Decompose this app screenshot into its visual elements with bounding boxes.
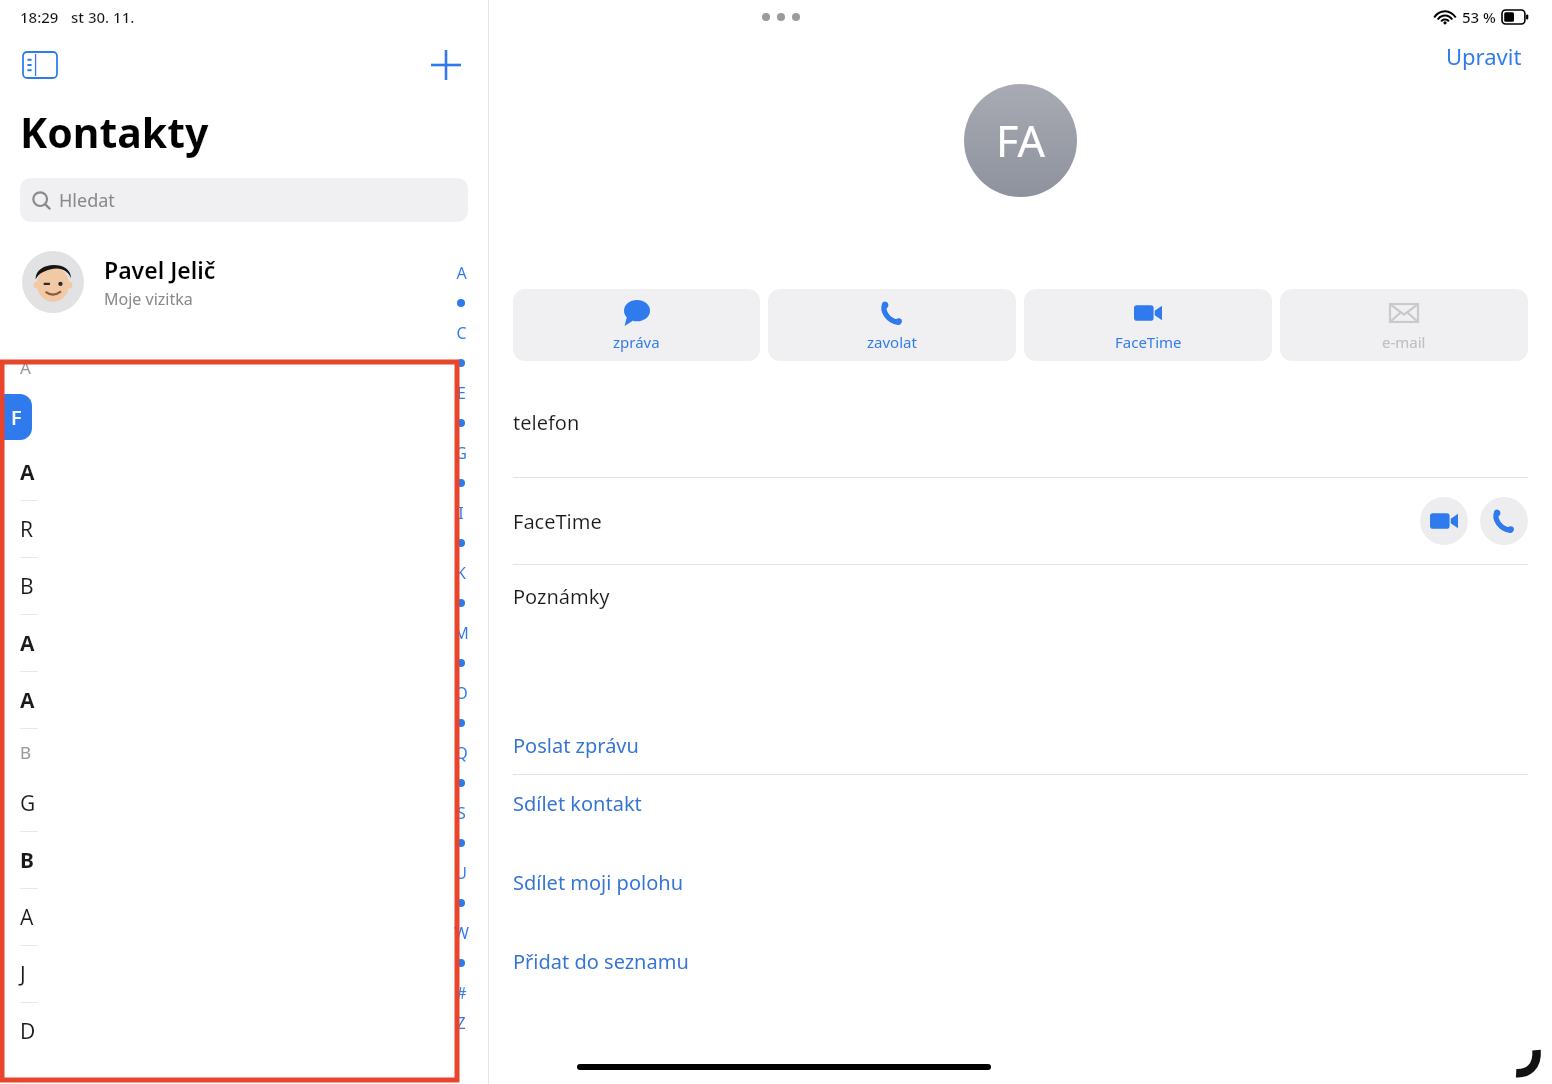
staticText: J: [20, 960, 26, 989]
staticText: E: [457, 382, 466, 404]
staticText: Poznámky: [513, 583, 610, 610]
button[interactable]: B: [0, 558, 488, 614]
button[interactable]: telefon: [513, 391, 1528, 477]
button[interactable]: zpráva: [513, 289, 760, 361]
staticText: Moje vizitka: [104, 288, 193, 310]
staticText: telefon: [513, 409, 580, 436]
staticText: B: [20, 846, 34, 875]
button[interactable]: Poznámky: [513, 565, 1528, 717]
button[interactable]: Poslat zprávu: [513, 717, 1528, 774]
staticText: FaceTime: [1115, 332, 1182, 352]
button[interactable]: A: [0, 889, 488, 945]
button[interactable]: e-mail: [1280, 289, 1528, 361]
staticText: B: [20, 572, 34, 601]
staticText: Sdílet kontakt: [513, 790, 642, 817]
button[interactable]: A: [0, 672, 488, 728]
button[interactable]: Hledat: [20, 178, 468, 222]
button[interactable]: A: [0, 615, 488, 671]
staticText: st 30. 11.: [71, 7, 135, 27]
button[interactable]: FaceTime video: [1420, 497, 1468, 545]
button[interactable]: Sdílet moji polohu: [513, 854, 1528, 911]
staticText: Hledat: [59, 188, 115, 213]
staticText: zavolat: [867, 332, 917, 352]
staticText: A: [20, 356, 31, 379]
staticText: O: [455, 682, 468, 704]
staticText: #: [456, 982, 467, 1004]
button[interactable]: Upravit: [1440, 35, 1528, 77]
staticText: W: [454, 922, 469, 944]
button[interactable]: Přidat do seznamu: [513, 933, 1528, 990]
button[interactable]: Add contact: [424, 43, 468, 87]
button[interactable]: F: [0, 390, 488, 444]
staticText: e-mail: [1382, 332, 1426, 352]
staticText: Sdílet moji polohu: [513, 869, 683, 896]
button[interactable]: B: [0, 832, 488, 888]
button[interactable]: A: [0, 444, 488, 500]
staticText: 18:29: [20, 7, 59, 27]
staticText: C: [456, 322, 467, 344]
staticText: U: [455, 862, 467, 884]
staticText: FaceTime: [513, 508, 602, 535]
button[interactable]: FaceTime: [1024, 289, 1272, 361]
staticText: S: [457, 802, 466, 824]
button[interactable]: R: [0, 501, 488, 557]
staticText: B: [20, 741, 32, 764]
staticText: F: [11, 404, 22, 431]
staticText: G: [455, 442, 467, 464]
button[interactable]: Index: [448, 258, 474, 1038]
button[interactable]: zavolat: [768, 289, 1016, 361]
staticText: I: [458, 502, 464, 524]
staticText: Přidat do seznamu: [513, 948, 689, 975]
staticText: Z: [456, 1012, 466, 1034]
staticText: D: [20, 1017, 36, 1046]
staticText: 53 %: [1462, 7, 1496, 27]
staticText: Q: [455, 742, 468, 764]
staticText: K: [456, 562, 466, 584]
button[interactable]: FaceTime audio: [1480, 497, 1528, 545]
staticText: Poslat zprávu: [513, 732, 639, 759]
staticText: G: [20, 789, 36, 818]
button[interactable]: D: [0, 1003, 488, 1059]
staticText: zpráva: [613, 332, 660, 352]
staticText: Pavel Jelič: [104, 254, 216, 285]
staticText: A: [20, 458, 35, 487]
staticText: Upravit: [1446, 41, 1522, 71]
button[interactable]: Toggle sidebar: [20, 45, 60, 85]
staticText: A: [456, 262, 467, 284]
button[interactable]: J: [0, 946, 488, 1002]
button[interactable]: G: [0, 775, 488, 831]
staticText: A: [20, 686, 35, 715]
button[interactable]: Pavel Jelič: [0, 244, 488, 320]
button[interactable]: FaceTime: [513, 478, 1528, 564]
staticText: Kontakty: [20, 104, 209, 160]
staticText: A: [20, 629, 35, 658]
button[interactable]: Sdílet kontakt: [513, 775, 1528, 832]
staticText: R: [20, 515, 34, 544]
staticText: M: [454, 622, 469, 644]
staticText: FA: [996, 111, 1045, 170]
staticText: A: [20, 903, 34, 932]
